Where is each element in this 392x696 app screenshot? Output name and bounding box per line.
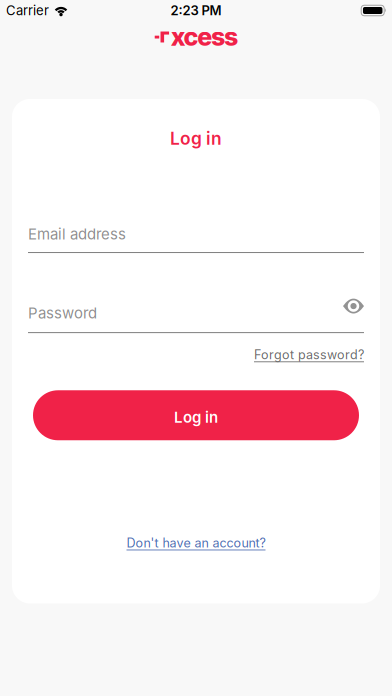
staticText: Don't have an account?	[126, 535, 265, 550]
staticText: Forgot password?	[254, 347, 364, 362]
button[interactable]: Don't have an account?	[126, 535, 265, 550]
button[interactable]: Password	[28, 304, 364, 333]
staticText: Email address	[28, 225, 126, 243]
staticText: xcess	[171, 21, 238, 52]
button[interactable]: Forgot password?	[254, 347, 364, 362]
staticText: 2:23 PM	[170, 3, 221, 18]
staticText: Log in	[170, 128, 222, 149]
staticText: Carrier	[6, 3, 49, 18]
button[interactable]: Log in	[33, 390, 359, 440]
button[interactable]: Show password	[343, 298, 364, 314]
staticText: Password	[28, 304, 97, 322]
staticText: Log in	[174, 408, 218, 426]
button[interactable]: Email address	[28, 225, 364, 253]
